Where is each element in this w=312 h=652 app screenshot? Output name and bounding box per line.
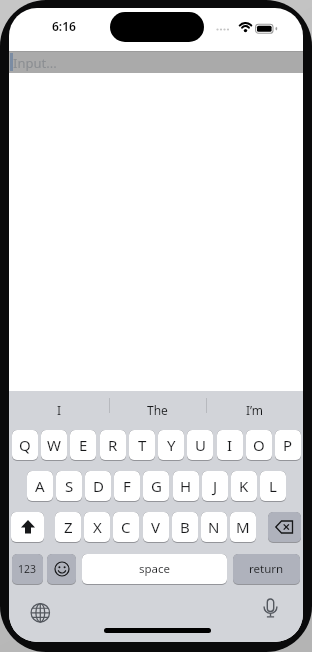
staticText: 6:16 [52,18,76,34]
button[interactable]: R [100,430,126,461]
button[interactable]: B [172,512,198,543]
button[interactable]: E [70,430,96,461]
button[interactable]: M [230,512,256,543]
staticText: U [195,435,206,455]
button[interactable]: H [173,471,199,502]
button[interactable]: return [233,554,300,585]
staticText: 123 [18,562,37,576]
staticText: F [123,476,131,496]
staticText: J [213,476,218,496]
button[interactable]: Z [55,512,81,543]
button[interactable]: T [129,430,155,461]
staticText: P [283,435,293,455]
button[interactable]: K [231,471,257,502]
staticText: Z [64,517,73,537]
button[interactable]: 123 [12,554,43,585]
button[interactable] [268,512,301,543]
button[interactable]: S [56,471,82,502]
staticText: I [227,435,233,455]
staticText: D [93,476,104,496]
button[interactable]: V [143,512,169,543]
staticText: K [239,476,249,496]
button[interactable]: P [275,430,301,461]
button[interactable]: D [85,471,111,502]
button[interactable]: J [202,471,228,502]
staticText: V [151,517,161,537]
staticText: return [249,561,284,577]
staticText: B [180,517,190,537]
staticText: W [47,435,61,455]
button[interactable]: I [217,430,243,461]
button[interactable]: The [109,391,206,429]
staticText: M [236,517,250,537]
button[interactable] [26,599,54,627]
staticText: The [147,402,168,418]
button[interactable]: I [9,391,109,429]
staticText: A [35,476,45,496]
button[interactable] [11,512,44,543]
staticText: C [121,517,131,537]
staticText: I’m [246,402,264,418]
staticText: L [269,476,277,496]
button[interactable]: A [27,471,53,502]
staticText: E [79,435,88,455]
staticText: I [57,402,62,418]
button[interactable]: N [201,512,227,543]
button[interactable]: I’m [206,391,303,429]
button[interactable]: L [260,471,286,502]
button[interactable]: Input... [9,51,303,73]
button[interactable]: W [41,430,67,461]
button[interactable] [47,554,76,585]
button[interactable]: Q [12,430,38,461]
button[interactable]: G [143,471,169,502]
button[interactable]: F [114,471,140,502]
staticText: R [108,435,118,455]
staticText: Q [19,435,31,455]
staticText: Y [167,435,176,455]
button[interactable]: C [113,512,139,543]
staticText: H [180,476,192,496]
staticText: T [138,435,147,455]
staticText: space [139,561,171,577]
staticText: X [93,517,102,537]
button[interactable]: O [246,430,272,461]
button[interactable]: Y [158,430,184,461]
staticText: O [253,435,265,455]
button[interactable]: U [187,430,213,461]
button[interactable]: X [84,512,110,543]
button[interactable] [257,597,285,625]
staticText: Input... [13,54,57,72]
staticText: N [208,517,220,537]
staticText: G [151,476,162,496]
staticText: S [65,476,74,496]
button[interactable]: space [82,554,227,585]
